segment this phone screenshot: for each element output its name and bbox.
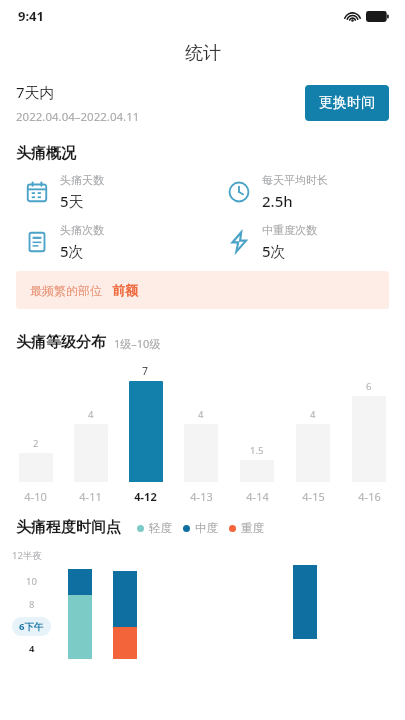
button[interactable]: 轻度	[137, 521, 172, 535]
staticText: 4	[88, 408, 94, 421]
staticText: 10	[26, 575, 37, 588]
button[interactable]: 1.5	[229, 364, 285, 504]
staticText: 1.5	[250, 444, 264, 457]
staticText: 4-10	[24, 489, 47, 504]
staticText: 1级–10级	[114, 336, 161, 351]
staticText: 4-14	[246, 489, 269, 504]
button[interactable]: 4	[285, 364, 341, 504]
staticText: 重度	[241, 521, 264, 535]
staticText: 12半夜	[12, 549, 42, 562]
button[interactable]: 最频繁的部位	[16, 271, 389, 309]
staticText: 前额	[112, 282, 138, 298]
staticText: 统计	[185, 42, 221, 65]
staticText: 中重度次数	[262, 223, 317, 237]
staticText: 5次	[60, 241, 84, 261]
button[interactable]: 中重度次数	[202, 223, 405, 261]
staticText: 2.5h	[262, 191, 293, 211]
staticText: 7	[142, 364, 149, 378]
staticText: 头痛概况	[16, 144, 76, 163]
staticText: 7天内	[16, 82, 55, 102]
button[interactable]: 7	[118, 364, 173, 504]
staticText: 8	[29, 598, 35, 611]
staticText: 头痛天数	[60, 173, 104, 187]
staticText: 4	[198, 408, 204, 421]
staticText: 轻度	[149, 521, 172, 535]
button[interactable]: 4	[63, 364, 118, 504]
staticText: 更换时间	[319, 94, 375, 112]
staticText: 4	[310, 408, 316, 421]
button[interactable]: 2	[8, 364, 63, 504]
button[interactable]: 6	[341, 364, 397, 504]
staticText: 2	[33, 437, 39, 450]
button[interactable]: 更换时间	[305, 85, 389, 121]
staticText: 4	[29, 642, 35, 655]
staticText: 4-13	[190, 489, 213, 504]
button[interactable]: 重度	[229, 521, 264, 535]
staticText: 9:41	[18, 7, 44, 25]
staticText: 头痛次数	[60, 223, 104, 237]
button[interactable]: 每天平均时长	[202, 173, 405, 211]
button[interactable]: 头痛次数	[0, 223, 202, 261]
staticText: 2022.04.04–2022.04.11	[16, 109, 140, 125]
staticText: 头痛等级分布	[16, 333, 106, 352]
staticText: 4-12	[134, 489, 157, 504]
button[interactable]	[68, 569, 92, 659]
button[interactable]: 中度	[183, 521, 218, 535]
button[interactable]: 头痛天数	[0, 173, 202, 211]
staticText: 5天	[60, 191, 84, 211]
staticText: 4-11	[79, 489, 102, 504]
staticText: 每天平均时长	[262, 173, 328, 187]
staticText: 最频繁的部位	[30, 283, 102, 298]
staticText: 4-16	[358, 489, 381, 504]
staticText: 4-15	[302, 489, 325, 504]
staticText: 6	[366, 380, 372, 393]
staticText: 6下午	[19, 620, 44, 633]
staticText: 头痛程度时间点	[16, 518, 121, 537]
button[interactable]: 4	[173, 364, 229, 504]
button[interactable]	[113, 571, 137, 659]
staticText: 5次	[262, 241, 286, 261]
staticText: 中度	[195, 521, 218, 535]
